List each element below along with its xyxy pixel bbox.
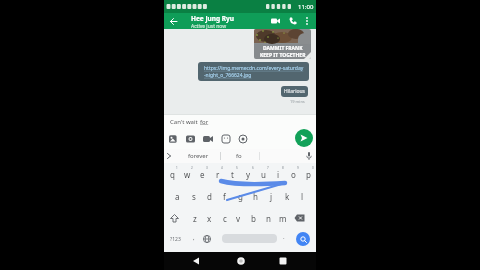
button[interactable] bbox=[289, 17, 297, 25]
button[interactable]: q bbox=[167, 168, 178, 181]
staticText: DAMMIT FRANK bbox=[263, 45, 303, 52]
button[interactable]: d bbox=[204, 190, 215, 203]
staticText: m bbox=[279, 213, 287, 224]
button[interactable]: w bbox=[182, 168, 193, 181]
staticText: w bbox=[184, 169, 191, 180]
staticText: z bbox=[193, 213, 197, 224]
button[interactable]: ?123 bbox=[170, 236, 181, 243]
staticText: forever bbox=[188, 152, 209, 160]
staticText: Hilarious bbox=[284, 88, 305, 95]
staticText: -night_o_766624.jpg bbox=[204, 72, 252, 79]
button[interactable]: u bbox=[258, 168, 269, 181]
staticText: Can't wait bbox=[170, 118, 200, 126]
staticText: Hee Jung Ryu bbox=[191, 14, 235, 23]
staticText: v bbox=[236, 213, 241, 224]
staticText: 3 bbox=[206, 166, 208, 170]
staticText: 6 bbox=[252, 166, 254, 170]
staticText: p bbox=[306, 169, 311, 180]
staticText: for bbox=[200, 118, 209, 126]
button[interactable]: z bbox=[189, 212, 200, 225]
button[interactable]: c bbox=[219, 212, 230, 225]
button[interactable]: l bbox=[297, 190, 308, 203]
button[interactable]: r bbox=[212, 168, 223, 181]
button[interactable]: DAMMIT FRANK bbox=[254, 29, 311, 59]
button[interactable]: j bbox=[266, 190, 277, 203]
staticText: y bbox=[246, 169, 251, 180]
button[interactable]: g bbox=[235, 190, 246, 203]
button[interactable]: fo bbox=[224, 149, 254, 163]
button[interactable]: Hilarious bbox=[281, 86, 308, 97]
button[interactable] bbox=[295, 129, 313, 147]
button[interactable]: t bbox=[227, 168, 238, 181]
staticText: l bbox=[301, 191, 304, 202]
button[interactable]: e bbox=[197, 168, 208, 181]
button[interactable] bbox=[170, 214, 179, 223]
button[interactable] bbox=[237, 257, 245, 265]
staticText: fo bbox=[236, 152, 242, 160]
staticText: e bbox=[200, 169, 205, 180]
button[interactable] bbox=[166, 153, 172, 159]
staticText: d bbox=[207, 191, 212, 202]
button[interactable] bbox=[294, 214, 305, 222]
staticText: i bbox=[277, 169, 280, 180]
staticText: 4 bbox=[221, 166, 223, 170]
staticText: u bbox=[261, 169, 266, 180]
staticText: 1 bbox=[176, 166, 178, 170]
button[interactable]: Hee Jung Ryu bbox=[191, 14, 235, 30]
button[interactable]: x bbox=[204, 212, 215, 225]
button[interactable]: forever bbox=[178, 149, 218, 163]
staticText: n bbox=[266, 213, 271, 224]
button[interactable]: n bbox=[263, 212, 274, 225]
staticText: 9 bbox=[297, 166, 299, 170]
button[interactable] bbox=[306, 152, 312, 161]
staticText: r bbox=[216, 169, 220, 180]
button[interactable] bbox=[170, 18, 177, 25]
button[interactable]: i bbox=[273, 168, 284, 181]
staticText: 7 bbox=[267, 166, 269, 170]
staticText: h bbox=[253, 191, 258, 202]
button[interactable] bbox=[296, 232, 310, 246]
staticText: t bbox=[231, 169, 234, 180]
staticText: c bbox=[223, 213, 227, 224]
button[interactable] bbox=[222, 234, 277, 243]
button[interactable]: h bbox=[250, 190, 261, 203]
staticText: a bbox=[175, 191, 180, 202]
staticText: b bbox=[251, 213, 256, 224]
staticText: q bbox=[170, 169, 175, 180]
button[interactable]: f bbox=[219, 190, 230, 203]
staticText: k bbox=[285, 191, 290, 202]
button[interactable]: y bbox=[243, 168, 254, 181]
button[interactable] bbox=[192, 257, 200, 265]
button[interactable]: p bbox=[303, 168, 314, 181]
button[interactable]: , bbox=[193, 234, 195, 242]
button[interactable]: o bbox=[288, 168, 299, 181]
staticText: 19 mins bbox=[290, 99, 305, 104]
staticText: https://img.memecdn.com/every-saturday bbox=[204, 65, 304, 72]
staticText: 8 bbox=[282, 166, 284, 170]
button[interactable] bbox=[279, 257, 287, 265]
button[interactable]: b bbox=[248, 212, 259, 225]
button[interactable] bbox=[305, 17, 309, 25]
button[interactable]: https://img.memecdn.com/every-saturday bbox=[198, 62, 309, 81]
staticText: f bbox=[223, 191, 226, 202]
button[interactable]: m bbox=[277, 212, 288, 225]
staticText: Active just now bbox=[191, 23, 227, 30]
button[interactable]: s bbox=[188, 190, 199, 203]
staticText: KEEP IT TOGETHER bbox=[260, 52, 306, 59]
button[interactable] bbox=[203, 235, 211, 243]
staticText: s bbox=[192, 191, 196, 202]
staticText: 5 bbox=[236, 166, 238, 170]
staticText: g bbox=[238, 191, 243, 202]
staticText: j bbox=[270, 191, 273, 202]
staticText: o bbox=[291, 169, 296, 180]
button[interactable]: a bbox=[172, 190, 183, 203]
staticText: 0 bbox=[312, 166, 314, 170]
button[interactable]: v bbox=[233, 212, 244, 225]
staticText: x bbox=[207, 213, 212, 224]
button[interactable]: k bbox=[282, 190, 293, 203]
staticText: 11:00 bbox=[298, 3, 314, 11]
button[interactable] bbox=[271, 17, 280, 25]
button[interactable]: . bbox=[283, 233, 285, 241]
staticText: 2 bbox=[191, 166, 193, 170]
